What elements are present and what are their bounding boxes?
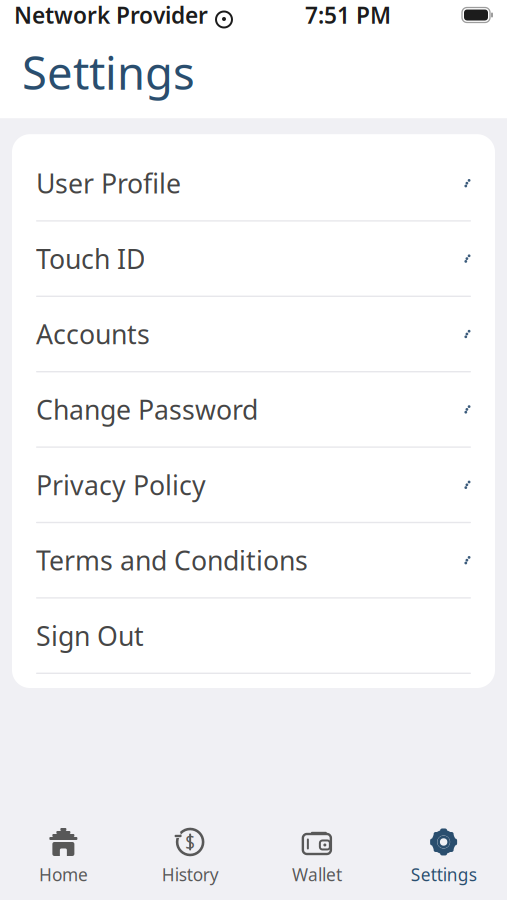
staticText: Accounts	[36, 316, 150, 352]
staticText: History	[162, 863, 219, 886]
staticText: Home	[39, 863, 88, 886]
staticText: Terms and Conditions	[36, 542, 308, 578]
staticText: Settings	[411, 863, 477, 886]
staticText: Touch ID	[36, 241, 145, 276]
button[interactable]: S	[127, 826, 254, 886]
button[interactable]: Accounts	[12, 297, 495, 372]
staticText: Wallet	[292, 863, 342, 886]
staticText: S	[185, 830, 195, 853]
button[interactable]: Home	[0, 826, 127, 886]
staticText: Change Password	[36, 392, 258, 427]
button[interactable]: Change Password	[12, 372, 495, 448]
button[interactable]: Settings	[380, 826, 507, 886]
staticText: User Profile	[36, 165, 181, 201]
button[interactable]: Wallet	[253, 826, 380, 886]
staticText: Privacy Policy	[36, 467, 206, 502]
button[interactable]: User Profile	[12, 146, 495, 222]
button[interactable]: Sign Out	[12, 599, 495, 674]
button[interactable]: Touch ID	[12, 222, 495, 297]
staticText: Settings	[22, 42, 195, 102]
staticText: 7:51 PM	[305, 0, 391, 30]
button[interactable]: Privacy Policy	[12, 448, 495, 523]
staticText: Sign Out	[36, 618, 144, 653]
button[interactable]: Terms and Conditions	[12, 523, 495, 599]
staticText: Network Provider	[14, 0, 208, 30]
